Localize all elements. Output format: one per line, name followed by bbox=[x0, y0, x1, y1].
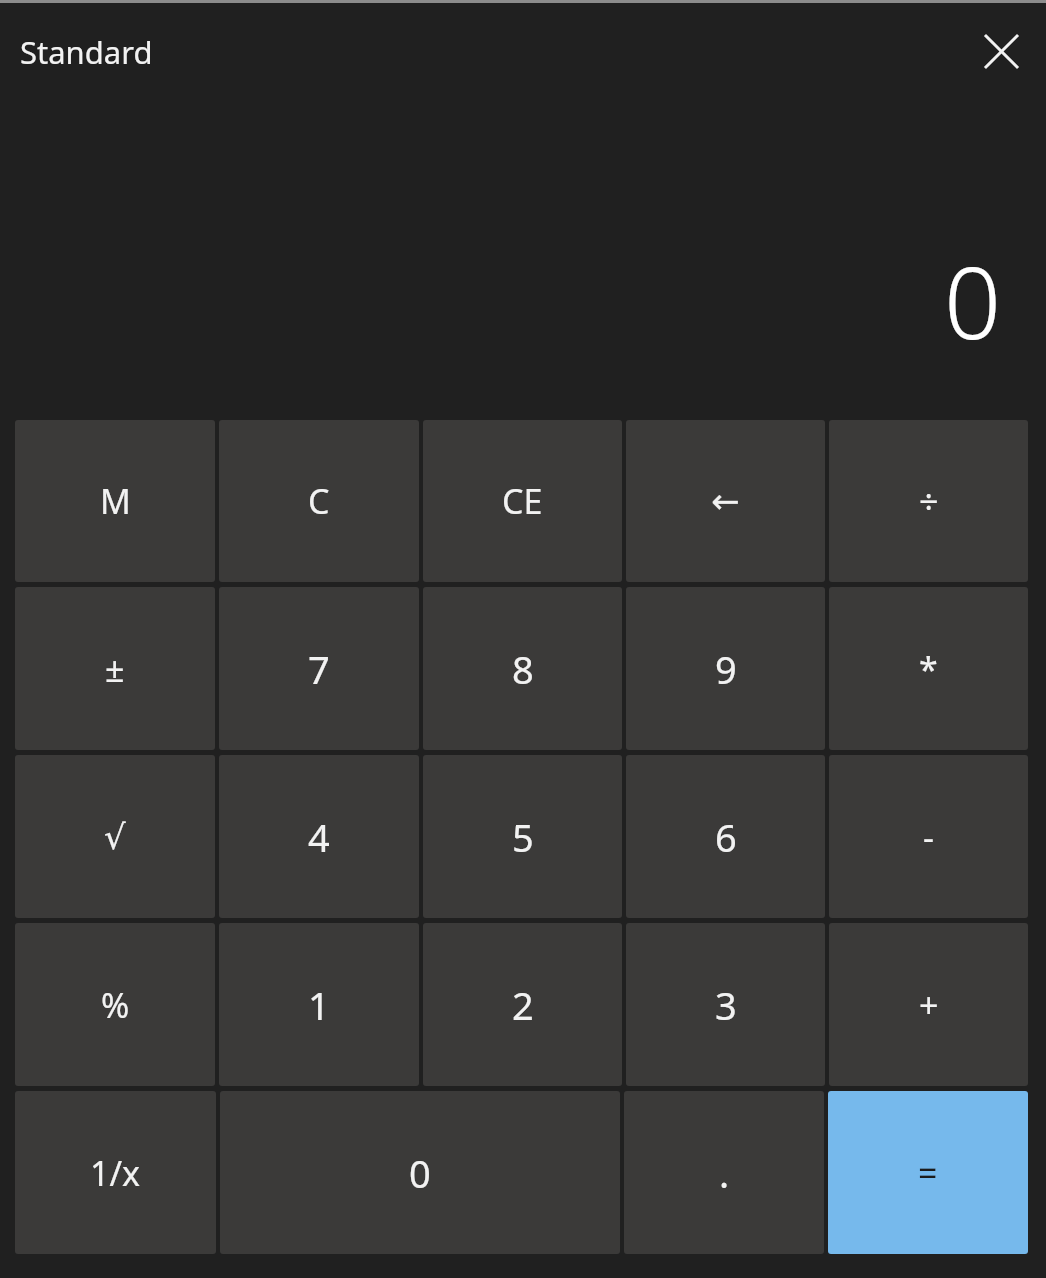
staticText: 3 bbox=[715, 979, 737, 1031]
button[interactable]: ± bbox=[15, 587, 215, 750]
button[interactable]: % bbox=[15, 923, 215, 1086]
staticText: CE bbox=[502, 478, 543, 524]
staticText: 2 bbox=[512, 979, 534, 1031]
button[interactable]: ← bbox=[626, 420, 825, 582]
button[interactable]: 5 bbox=[423, 755, 622, 918]
staticText: M bbox=[100, 478, 131, 524]
staticText: ← bbox=[711, 481, 740, 521]
button[interactable]: * bbox=[829, 587, 1028, 750]
button[interactable]: M bbox=[15, 420, 215, 582]
button[interactable]: + bbox=[829, 923, 1028, 1086]
staticText: 1/x bbox=[90, 1150, 141, 1196]
staticText: ÷ bbox=[919, 478, 939, 524]
button[interactable]: 9 bbox=[626, 587, 825, 750]
staticText: 1 bbox=[308, 979, 330, 1031]
staticText: 9 bbox=[715, 643, 737, 695]
button[interactable]: = bbox=[828, 1091, 1028, 1254]
button[interactable]: . bbox=[624, 1091, 824, 1254]
staticText: 0 bbox=[944, 232, 1002, 368]
staticText: 8 bbox=[512, 643, 534, 695]
button[interactable]: 7 bbox=[219, 587, 419, 750]
staticText: - bbox=[923, 814, 934, 860]
staticText: + bbox=[919, 982, 939, 1028]
staticText: * bbox=[919, 646, 938, 692]
button[interactable]: ÷ bbox=[829, 420, 1028, 582]
button[interactable]: √ bbox=[15, 755, 215, 918]
button[interactable]: 0 bbox=[220, 1091, 620, 1254]
button[interactable]: 4 bbox=[219, 755, 419, 918]
button[interactable]: - bbox=[829, 755, 1028, 918]
staticText: 4 bbox=[308, 811, 330, 863]
staticText: 0 bbox=[409, 1147, 431, 1199]
staticText: √ bbox=[104, 817, 126, 857]
button[interactable]: 6 bbox=[626, 755, 825, 918]
staticText: . bbox=[719, 1147, 730, 1199]
staticText: 6 bbox=[715, 811, 737, 863]
button[interactable]: C bbox=[219, 420, 419, 582]
staticText: ± bbox=[105, 646, 125, 692]
staticText: C bbox=[308, 478, 330, 524]
staticText: 5 bbox=[512, 811, 534, 863]
button[interactable]: 8 bbox=[423, 587, 622, 750]
button[interactable]: 3 bbox=[626, 923, 825, 1086]
staticText: = bbox=[918, 1150, 938, 1196]
staticText: 7 bbox=[308, 643, 330, 695]
button[interactable]: 1 bbox=[219, 923, 419, 1086]
button[interactable]: 2 bbox=[423, 923, 622, 1086]
button[interactable]: Close bbox=[956, 3, 1046, 100]
button[interactable]: 1/x bbox=[15, 1091, 216, 1254]
staticText: % bbox=[101, 982, 130, 1028]
button[interactable]: CE bbox=[423, 420, 622, 582]
staticText: Standard bbox=[20, 31, 153, 73]
